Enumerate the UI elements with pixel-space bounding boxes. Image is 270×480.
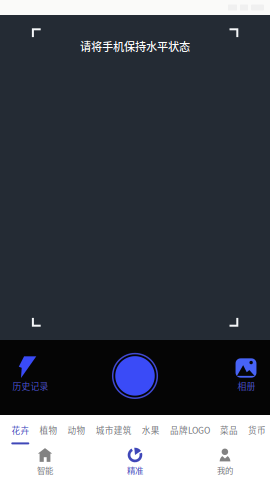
button[interactable]: 我的: [180, 446, 270, 480]
button[interactable]: 历史记录: [6, 353, 52, 399]
button[interactable]: 植物: [39, 424, 57, 436]
button[interactable]: 拍照: [110, 351, 160, 401]
button[interactable]: 智能: [0, 446, 90, 480]
staticText: 货币: [248, 424, 266, 436]
button[interactable]: 城市建筑: [96, 424, 132, 436]
button[interactable]: 相册: [223, 353, 269, 399]
staticText: 花卉: [11, 424, 29, 436]
staticText: 菜品: [220, 424, 238, 436]
button[interactable]: 货币: [248, 424, 266, 436]
staticText: 动物: [68, 424, 86, 436]
staticText: 历史记录: [12, 380, 48, 392]
staticText: 我的: [217, 464, 233, 476]
staticText: 精准: [127, 464, 143, 476]
staticText: 品牌LOGO: [170, 424, 210, 436]
staticText: 相册: [237, 380, 255, 392]
staticText: 植物: [39, 424, 57, 436]
staticText: 水果: [142, 424, 160, 436]
staticText: 城市建筑: [96, 424, 132, 436]
button[interactable]: 精准: [90, 446, 180, 480]
button[interactable]: 动物: [68, 424, 86, 436]
button[interactable]: 花卉: [11, 424, 29, 436]
button[interactable]: 水果: [142, 424, 160, 436]
button[interactable]: 品牌LOGO: [170, 424, 210, 436]
staticText: 请将手机保持水平状态: [80, 38, 190, 54]
staticText: 智能: [37, 464, 53, 476]
button[interactable]: 菜品: [220, 424, 238, 436]
